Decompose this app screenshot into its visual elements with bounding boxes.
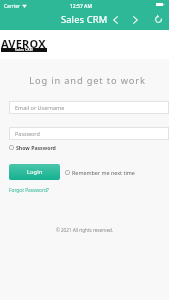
staticText: Password <box>15 130 40 137</box>
button[interactable]: Password <box>9 127 169 140</box>
button[interactable]: Show Password <box>9 144 56 151</box>
staticText: Sales CRM <box>15 48 33 52</box>
staticText: 12:57 AM <box>70 3 92 10</box>
button[interactable]: Reload <box>150 11 166 27</box>
button[interactable]: Remember me next time <box>65 169 135 176</box>
staticText: Email or Username <box>15 104 65 111</box>
staticText: Remember me next time <box>72 169 135 176</box>
button[interactable]: Email or Username <box>9 101 169 114</box>
button[interactable]: Back <box>107 12 123 28</box>
staticText: Login <box>27 168 43 176</box>
button[interactable]: Forward <box>127 12 143 28</box>
staticText: Sales CRM <box>61 13 108 26</box>
staticText: Carrier <box>4 3 20 10</box>
staticText: © 2021 All rights reserved. <box>0 227 169 233</box>
button[interactable]: Forgot Password? <box>9 187 49 194</box>
staticText: AVEROX <box>1 36 46 51</box>
button[interactable]: Login <box>9 164 60 180</box>
staticText: Log in and get to work <box>3 74 169 87</box>
staticText: Show Password <box>16 144 56 151</box>
